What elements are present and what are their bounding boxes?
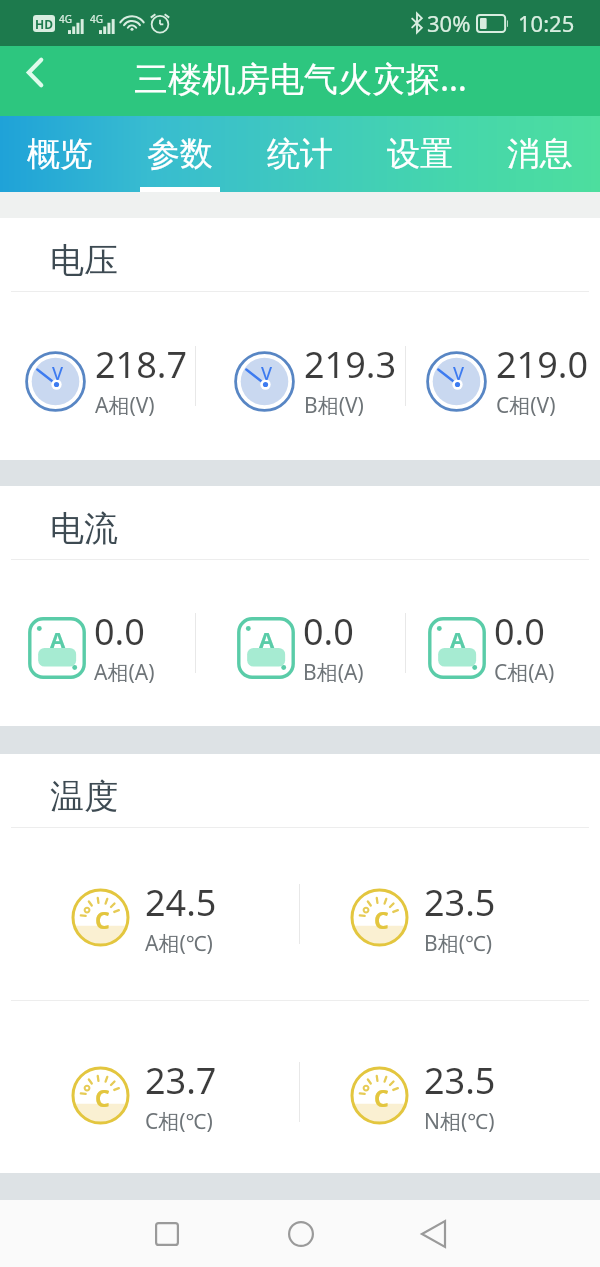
staticText: 4G [90, 12, 103, 26]
button[interactable]: C [0, 828, 299, 1000]
staticText: 23.5 [424, 878, 496, 927]
button[interactable]: C [279, 828, 579, 1000]
staticText: C [95, 904, 110, 935]
staticText: 概览 [27, 133, 93, 175]
staticText: 电流 [50, 507, 118, 550]
button[interactable]: Back [0, 53, 56, 109]
staticText: HD [35, 16, 53, 32]
staticText: B相(A) [303, 658, 364, 687]
staticText: N相(℃) [424, 1107, 495, 1136]
staticText: B相(℃) [424, 929, 493, 958]
staticText: 23.7 [145, 1056, 217, 1105]
button[interactable]: Home [272, 1205, 330, 1263]
staticText: 电压 [50, 239, 118, 282]
staticText: 温度 [50, 775, 118, 818]
staticText: 参数 [147, 133, 213, 175]
staticText: A相(A) [94, 658, 155, 687]
staticText: C相(V) [496, 391, 556, 420]
button[interactable]: Back [404, 1205, 462, 1263]
staticText: 24.5 [145, 878, 217, 927]
button[interactable]: 设置 [360, 116, 480, 192]
staticText: A [50, 624, 66, 654]
button[interactable]: A [205, 560, 414, 726]
button[interactable]: 概览 [0, 116, 120, 192]
staticText: 三楼机房电气火灾探… [134, 55, 467, 101]
staticText: 设置 [387, 133, 453, 175]
staticText: A相(V) [95, 391, 155, 420]
staticText: 0.0 [94, 607, 145, 656]
staticText: 219.3 [304, 340, 397, 389]
staticText: 统计 [267, 133, 333, 175]
staticText: A相(℃) [145, 929, 213, 958]
staticText: V [52, 361, 64, 386]
button[interactable]: V [404, 292, 598, 460]
button[interactable]: 参数 [120, 116, 240, 192]
button[interactable]: V [205, 292, 414, 460]
button[interactable]: A [404, 560, 598, 726]
staticText: V [453, 361, 465, 386]
button[interactable]: Recent apps [138, 1205, 196, 1263]
staticText: 0.0 [303, 607, 354, 656]
staticText: C [95, 1082, 110, 1113]
staticText: C相(A) [494, 658, 555, 687]
button[interactable]: C [0, 1006, 299, 1178]
staticText: 219.0 [496, 340, 589, 389]
staticText: 23.5 [424, 1056, 496, 1105]
button[interactable]: C [279, 1006, 579, 1178]
staticText: V [261, 361, 273, 386]
staticText: A [259, 624, 275, 654]
button[interactable]: 消息 [480, 116, 600, 192]
staticText: C [374, 904, 389, 935]
staticText: C相(℃) [145, 1107, 213, 1136]
button[interactable]: 统计 [240, 116, 360, 192]
staticText: C [374, 1082, 389, 1113]
staticText: 218.7 [95, 340, 188, 389]
staticText: B相(V) [304, 391, 364, 420]
staticText: A [450, 624, 466, 654]
staticText: 30% [427, 8, 471, 38]
button[interactable]: V [3, 292, 198, 460]
staticText: 0.0 [494, 607, 545, 656]
staticText: 4G [59, 12, 72, 26]
staticText: 消息 [507, 133, 573, 175]
button[interactable]: A [3, 560, 198, 726]
staticText: 10:25 [518, 8, 575, 38]
